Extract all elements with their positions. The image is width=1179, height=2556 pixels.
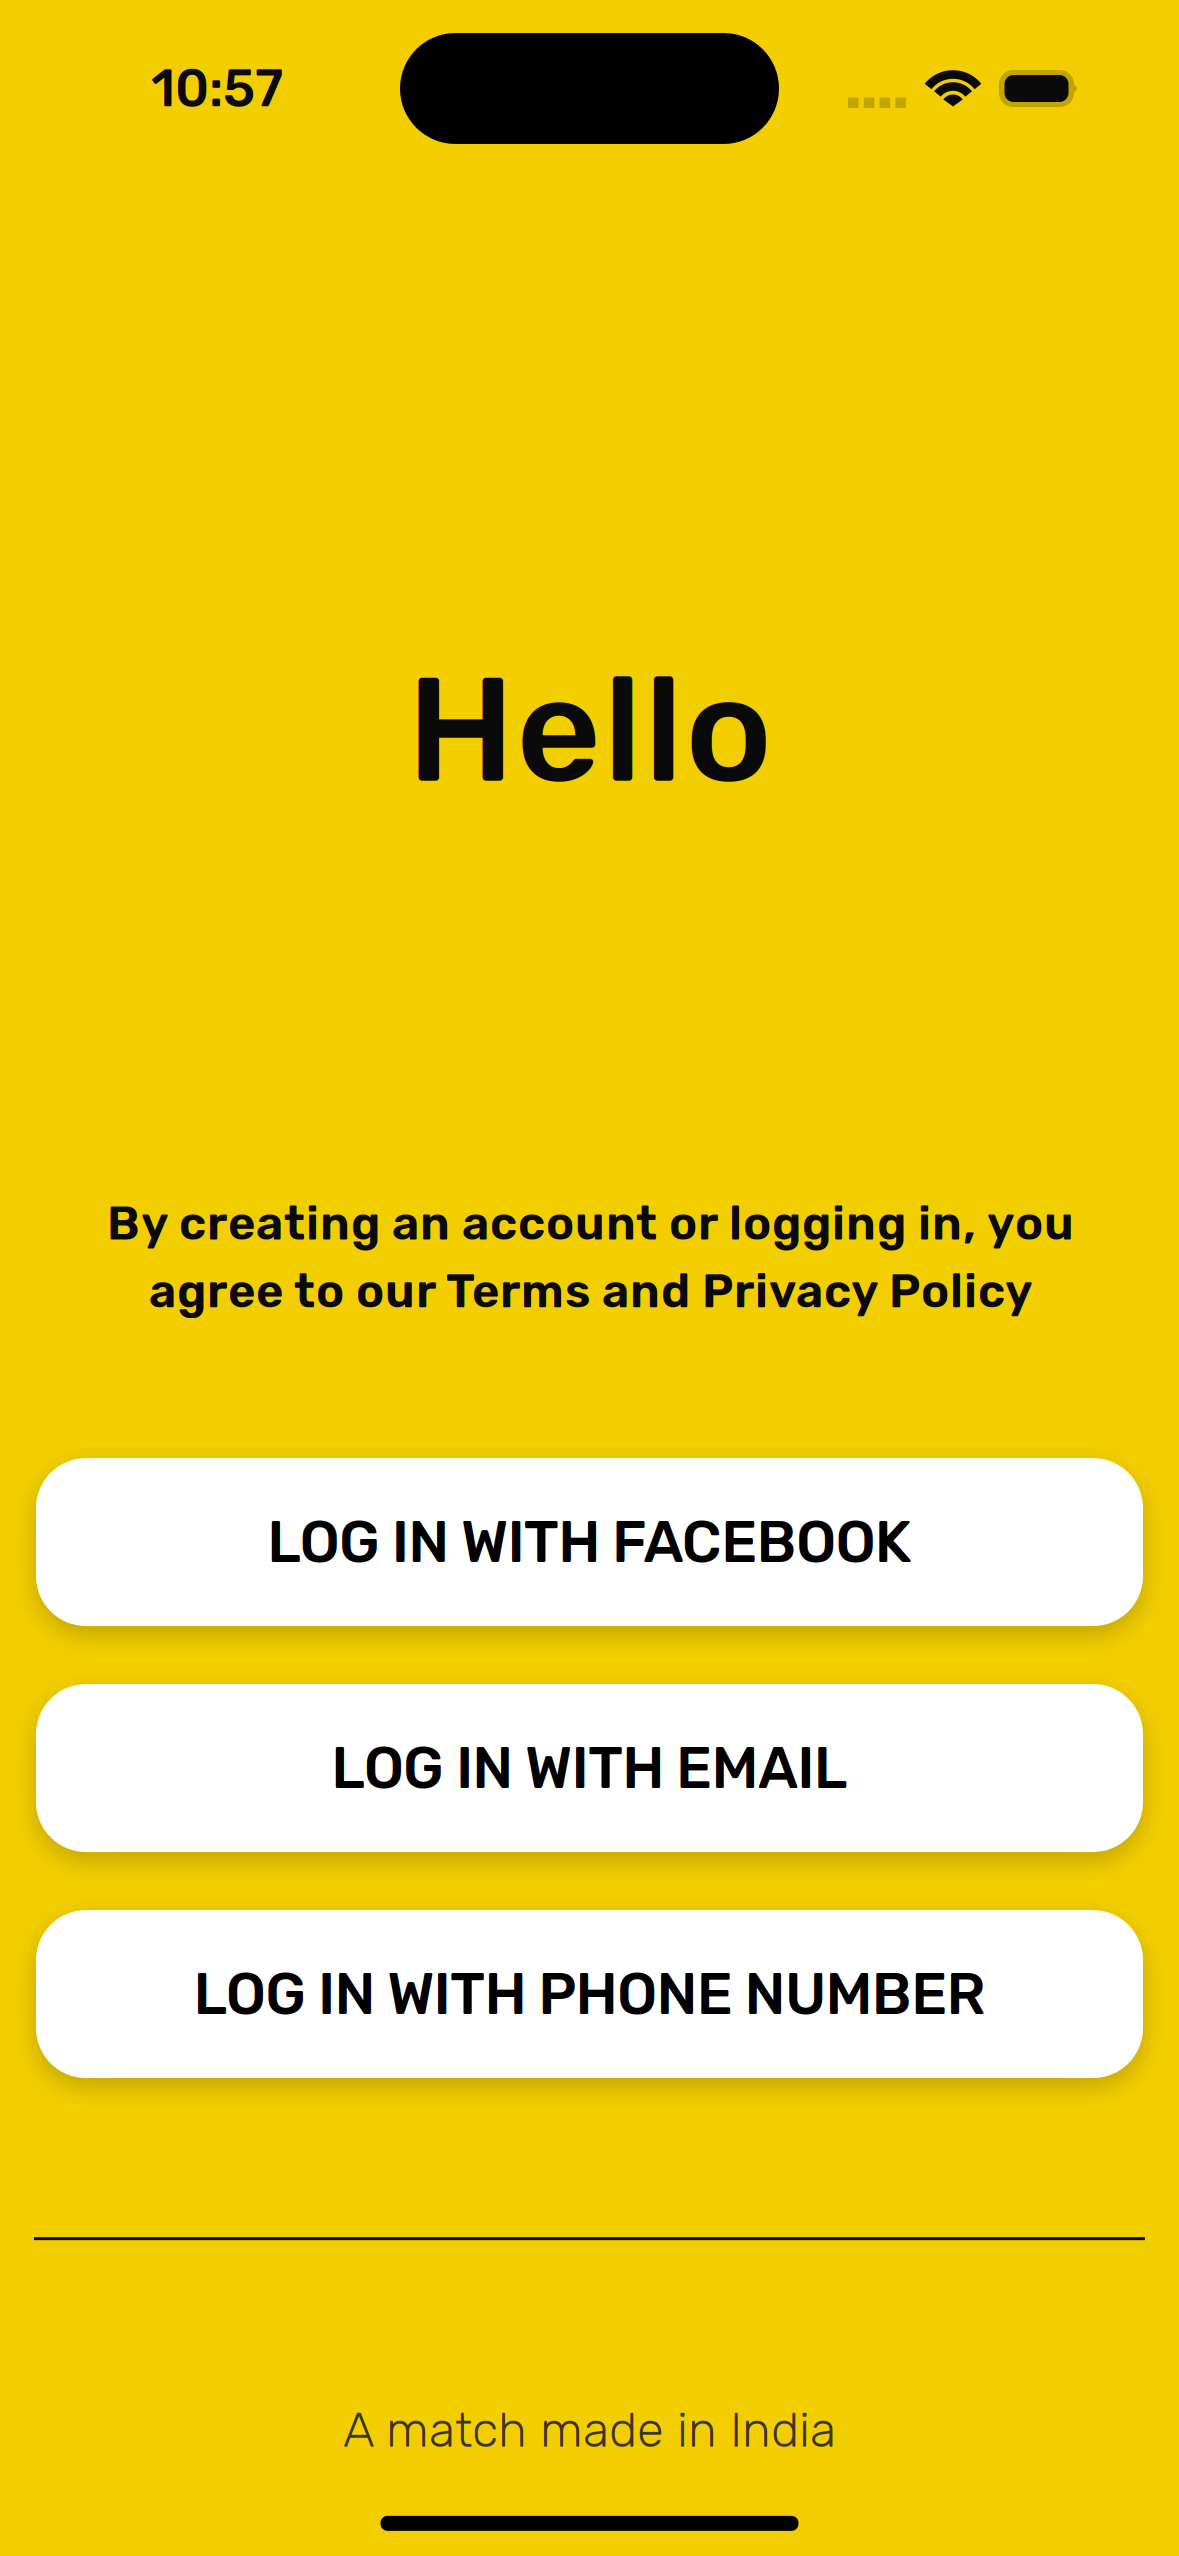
- staticText: LOG IN WITH FACEBOOK: [267, 1508, 912, 1576]
- staticText: LOG IN WITH EMAIL: [331, 1734, 848, 1802]
- staticText: 10:57: [151, 58, 283, 119]
- staticText: Hello: [407, 643, 772, 818]
- button[interactable]: LOG IN WITH EMAIL: [36, 1684, 1143, 1852]
- staticText: LOG IN WITH PHONE NUMBER: [193, 1960, 986, 2028]
- button[interactable]: LOG IN WITH PHONE NUMBER: [36, 1910, 1143, 2078]
- button[interactable]: LOG IN WITH FACEBOOK: [36, 1458, 1143, 1626]
- staticText: By creating an account or logging in, yo…: [106, 1196, 1073, 1319]
- staticText: A match made in India: [343, 2401, 836, 2459]
